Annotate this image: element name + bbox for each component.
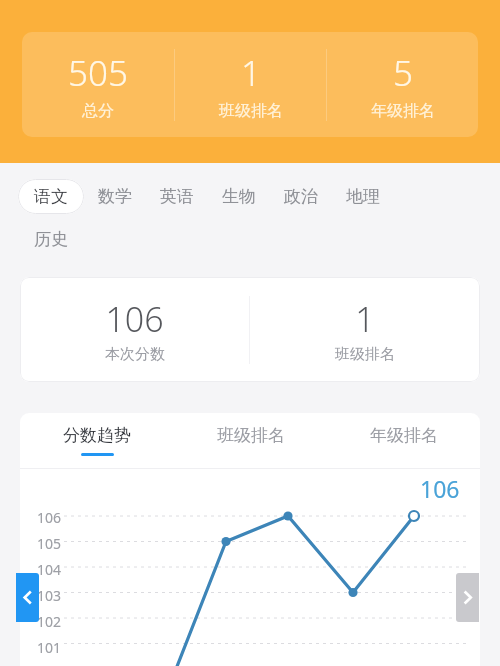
button[interactable]: 英语 (158, 178, 196, 215)
button[interactable]: 505 (22, 49, 174, 121)
staticText: 106 (105, 296, 164, 342)
staticText: 历史 (34, 229, 68, 250)
button[interactable]: 地理 (344, 178, 382, 215)
staticText: 106 (420, 473, 460, 504)
staticText: 班级排名 (217, 425, 285, 446)
button[interactable]: 1 (175, 49, 326, 121)
staticText: 生物 (222, 186, 256, 207)
staticText: 地理 (346, 186, 380, 207)
button[interactable]: 班级排名 (174, 413, 327, 468)
button[interactable]: 数学 (96, 178, 134, 215)
staticText: 语文 (34, 186, 68, 207)
staticText: 105 (37, 534, 62, 553)
staticText: 年级排名 (370, 425, 438, 446)
button[interactable]: Next page (456, 573, 479, 622)
staticText: 101 (37, 638, 62, 657)
staticText: 英语 (160, 186, 194, 207)
staticText: 505 (68, 49, 128, 97)
button[interactable]: 生物 (220, 178, 258, 215)
button[interactable]: Previous page (16, 573, 39, 622)
button[interactable]: 5 (327, 49, 478, 121)
button[interactable]: 分数趋势 (20, 413, 174, 468)
staticText: 总分 (82, 101, 114, 121)
button[interactable]: 1 (250, 296, 480, 364)
staticText: 班级排名 (219, 101, 283, 121)
staticText: 分数趋势 (63, 425, 131, 446)
staticText: 106 (37, 508, 62, 527)
staticText: 年级排名 (371, 101, 435, 121)
staticText: 政治 (284, 186, 318, 207)
staticText: 1 (241, 49, 261, 97)
staticText: 104 (37, 560, 62, 579)
staticText: 1 (355, 296, 375, 342)
staticText: 数学 (98, 186, 132, 207)
button[interactable]: 106 (20, 296, 249, 364)
staticText: 103 (37, 586, 62, 605)
staticText: 班级排名 (335, 345, 395, 364)
staticText: 102 (37, 612, 62, 631)
staticText: 本次分数 (105, 345, 165, 364)
staticText: 5 (393, 49, 413, 97)
button[interactable]: 政治 (282, 178, 320, 215)
button[interactable]: 年级排名 (327, 413, 480, 468)
button[interactable]: 历史 (32, 221, 70, 258)
button[interactable]: 语文 (18, 179, 84, 214)
